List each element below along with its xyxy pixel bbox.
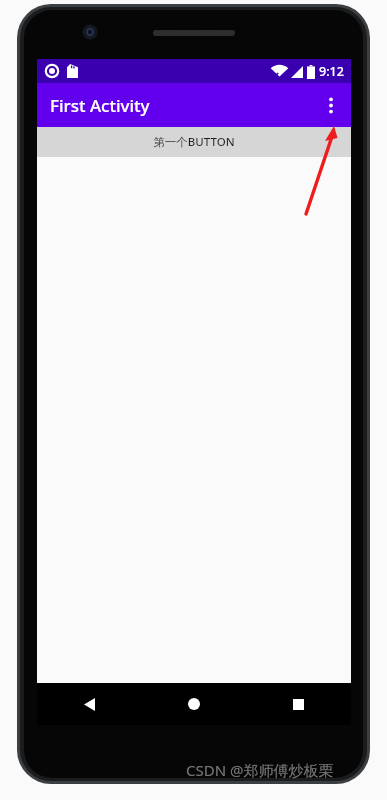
staticText: 9:12 bbox=[319, 63, 344, 80]
button[interactable]: Home bbox=[141, 683, 246, 725]
button[interactable]: Back bbox=[37, 683, 141, 725]
staticText: First Activity bbox=[50, 94, 150, 117]
button[interactable]: More options bbox=[311, 85, 351, 125]
button[interactable]: Recent apps bbox=[246, 683, 351, 725]
staticText: 第一个BUTTON bbox=[153, 134, 235, 150]
staticText: CSDN @郑师傅炒板栗 bbox=[186, 760, 334, 780]
button[interactable]: 第一个BUTTON bbox=[37, 127, 351, 157]
